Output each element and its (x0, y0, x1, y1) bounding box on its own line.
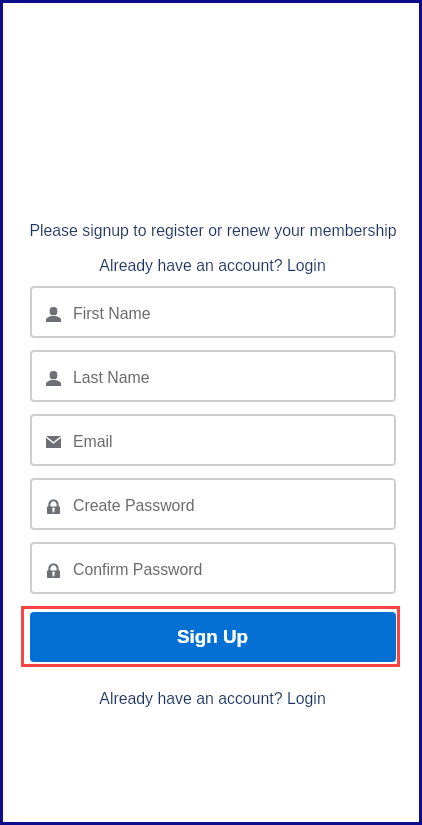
staticText: First Name (73, 305, 151, 323)
button[interactable]: Sign Up (30, 612, 396, 662)
button[interactable]: Already have an account? Login (99, 690, 326, 708)
button[interactable]: Already have an account? Login (99, 257, 326, 275)
button[interactable]: Last Name (30, 350, 396, 402)
button[interactable]: Confirm Password (30, 542, 396, 594)
button[interactable]: Create Password (30, 478, 396, 530)
staticText: Sign Up (177, 626, 249, 647)
staticText: Last Name (73, 369, 150, 387)
staticText: Create Password (73, 497, 195, 515)
button[interactable]: Email (30, 414, 396, 466)
staticText: Confirm Password (73, 561, 203, 579)
button[interactable]: First Name (30, 286, 396, 338)
staticText: Please signup to register or renew your … (2, 222, 422, 240)
staticText: Email (73, 433, 113, 451)
